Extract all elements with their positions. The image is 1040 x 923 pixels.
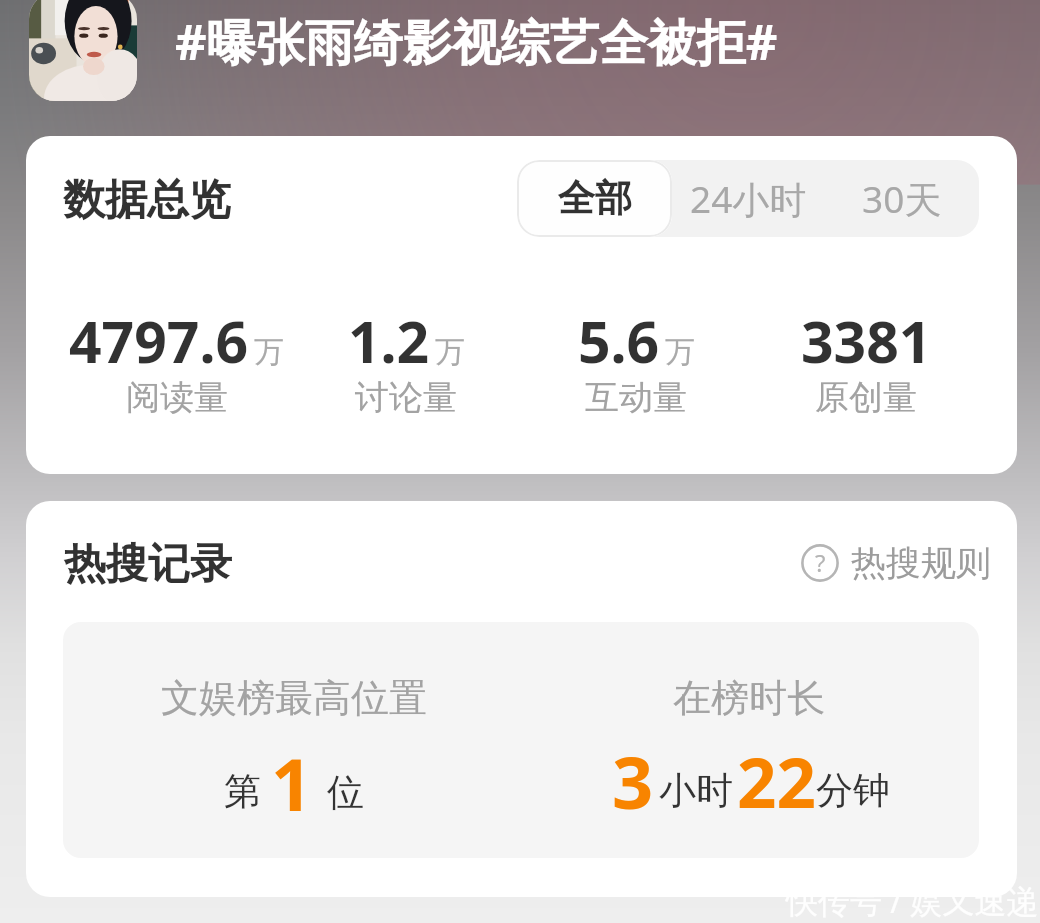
staticText: 第 (224, 768, 261, 815)
staticText: 分钟 (816, 767, 890, 814)
staticText: 万 (254, 333, 284, 371)
staticText: 1.2 (348, 302, 430, 380)
staticText: 3 (612, 732, 654, 830)
staticText: 阅读量 (126, 376, 228, 419)
staticText: 位 (327, 769, 364, 816)
button[interactable]: 用户头像 (29, 0, 137, 101)
staticText: 4797.6 (69, 302, 249, 380)
staticText: 5.6 (578, 302, 660, 380)
button[interactable]: 30天 (824, 160, 979, 237)
button[interactable]: #曝张雨绮影视综艺全被拒# (175, 8, 778, 75)
staticText: ? (815, 546, 826, 579)
staticText: 快传号 / 娱又速递 (786, 879, 1039, 923)
staticText: 3381 (801, 302, 932, 380)
button[interactable]: 热搜规则 (801, 541, 991, 585)
staticText: #曝张雨绮影视综艺全被拒# (175, 8, 778, 75)
staticText: 原创量 (815, 376, 917, 419)
staticText: 数据总览 (63, 174, 231, 227)
staticText: 万 (665, 333, 695, 371)
staticText: 讨论量 (355, 376, 457, 419)
staticText: 在榜时长 (673, 674, 825, 722)
button[interactable]: 在榜时长 3小时22分钟 (521, 622, 979, 858)
staticText: 万 (435, 333, 465, 371)
staticText: 热搜规则 (851, 541, 991, 585)
staticText: 全部 (558, 175, 632, 222)
staticText: 24小时 (690, 173, 807, 224)
button[interactable]: 24小时 (672, 160, 824, 237)
staticText: 小时 (659, 767, 733, 814)
staticText: 22 (737, 734, 816, 828)
button[interactable]: 全部 (517, 160, 672, 237)
staticText: 热搜记录 (64, 538, 232, 591)
staticText: 1 (271, 734, 313, 832)
staticText: 互动量 (585, 376, 687, 419)
staticText: 30天 (862, 173, 942, 224)
button[interactable]: 文娱榜最高位置 第1位 (63, 622, 521, 858)
staticText: 文娱榜最高位置 (161, 674, 427, 722)
